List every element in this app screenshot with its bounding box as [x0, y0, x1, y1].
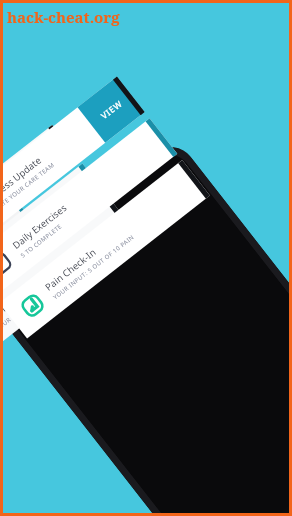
button[interactable]: Mark complete — [0, 125, 78, 290]
button[interactable]: Mark complete — [0, 77, 145, 255]
button[interactable]: Mark complete — [0, 118, 177, 297]
staticText: Progress Update — [0, 154, 44, 210]
button[interactable]: Completed — [0, 202, 138, 367]
staticText: UPDATE YOUR CARE TEAM — [0, 160, 57, 218]
button[interactable]: Mark complete — [0, 164, 108, 328]
staticText: Pain Check-In — [42, 246, 98, 293]
staticText: 5 TO COMPLETE — [19, 222, 64, 260]
staticText: VIEW — [98, 97, 125, 122]
staticText: hack-cheat.org — [7, 7, 120, 27]
button[interactable]: Completed — [0, 160, 210, 338]
staticText: YOUR INPUT: 5 OUT OF 10 PAIN — [0, 284, 18, 353]
staticText: Pain Check-In — [0, 277, 41, 325]
button[interactable]: Completed — [0, 232, 66, 384]
button[interactable]: Mark complete — [0, 160, 9, 312]
button[interactable]: Completed — [16, 289, 49, 322]
staticText: YOUR INPUT: 5 OUT OF 10 PAIN — [52, 233, 136, 301]
button[interactable]: Mark complete — [0, 248, 16, 280]
staticText: YOUR INPUT: 5 OUT OF 10 PAIN — [0, 264, 78, 333]
button[interactable]: VIEW — [77, 77, 145, 143]
staticText: Daily Exercises — [0, 235, 15, 286]
staticText: Daily Exercises — [10, 201, 70, 252]
button[interactable]: Mark complete — [0, 196, 38, 348]
staticText: 5 TO COMPLETE — [0, 256, 9, 294]
staticText: UPDATE YOUR CARE TEAM — [0, 198, 4, 256]
